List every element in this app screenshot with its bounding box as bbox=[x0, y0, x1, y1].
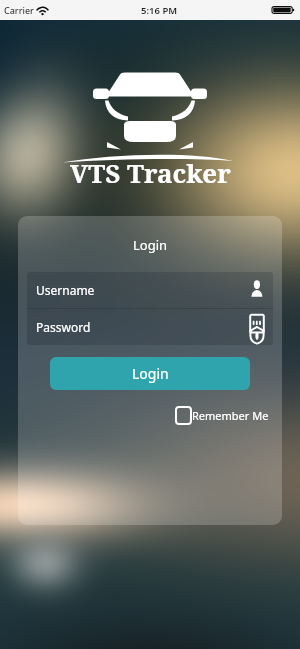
button[interactable]: Remember Me bbox=[175, 406, 269, 425]
other: Username bbox=[247, 273, 267, 307]
staticText: VTS Tracker bbox=[70, 155, 231, 190]
staticText: Remember Me bbox=[192, 408, 269, 423]
button[interactable]: Username bbox=[27, 272, 273, 308]
staticText: 5:16 PM bbox=[141, 4, 178, 17]
button[interactable]: Password bbox=[27, 309, 273, 345]
staticText: Login bbox=[18, 236, 282, 254]
other: Password bbox=[247, 310, 267, 344]
button[interactable]: Login bbox=[50, 357, 250, 390]
staticText: Username bbox=[36, 282, 95, 298]
staticText: Login bbox=[132, 364, 169, 383]
staticText: Carrier bbox=[4, 4, 34, 16]
staticText: Password bbox=[36, 319, 91, 335]
